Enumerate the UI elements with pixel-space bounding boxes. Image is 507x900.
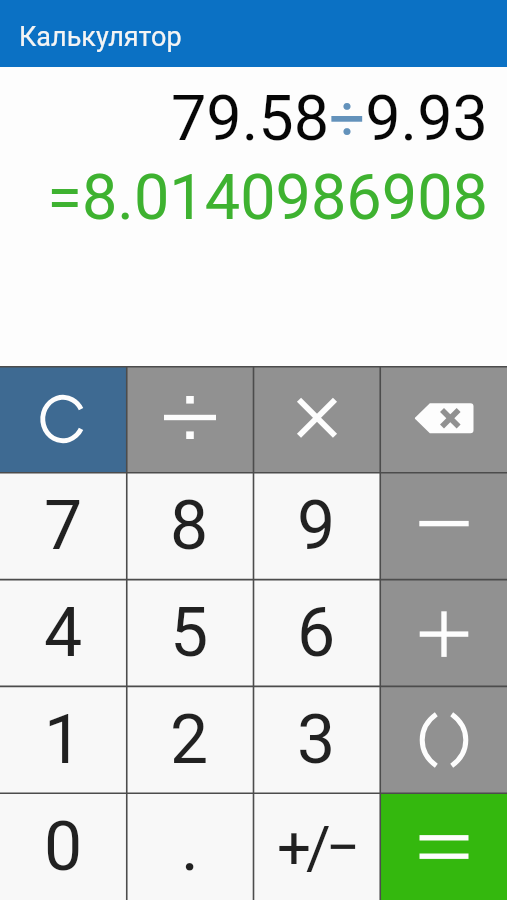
- button[interactable]: 6: [253, 579, 380, 686]
- staticText: +/−: [277, 812, 356, 882]
- button[interactable]: Multiply: [253, 366, 380, 472]
- staticText: 9: [297, 486, 336, 566]
- staticText: 4: [44, 593, 83, 673]
- staticText: 5: [170, 593, 209, 673]
- staticText: 1: [44, 700, 83, 780]
- staticText: 79.58÷9.93: [170, 82, 488, 156]
- button[interactable]: 2: [126, 686, 253, 793]
- button[interactable]: +/−: [253, 793, 380, 900]
- button[interactable]: 7: [0, 472, 126, 579]
- staticText: .: [181, 807, 199, 887]
- button[interactable]: 9: [253, 472, 380, 579]
- button[interactable]: Divide: [126, 366, 253, 472]
- button[interactable]: 5: [126, 579, 253, 686]
- staticText: Калькулятор: [19, 21, 182, 53]
- button[interactable]: 8: [126, 472, 253, 579]
- staticText: 7: [44, 486, 83, 566]
- button[interactable]: Equals: [380, 793, 507, 900]
- button[interactable]: 3: [253, 686, 380, 793]
- button[interactable]: 0: [0, 793, 126, 900]
- button[interactable]: 4: [0, 579, 126, 686]
- button[interactable]: Backspace: [380, 366, 507, 472]
- button[interactable]: Clear: [0, 366, 126, 472]
- button[interactable]: .: [126, 793, 253, 900]
- button[interactable]: Parentheses: [380, 686, 507, 793]
- staticText: 2: [170, 700, 209, 780]
- staticText: 3: [297, 700, 336, 780]
- button[interactable]: Plus: [380, 579, 507, 686]
- button[interactable]: Minus: [380, 472, 507, 579]
- staticText: 8: [170, 486, 209, 566]
- button[interactable]: Калькулятор: [0, 0, 507, 67]
- staticText: 6: [297, 593, 336, 673]
- staticText: =8.0140986908: [47, 161, 488, 235]
- staticText: 0: [44, 807, 83, 887]
- button[interactable]: 1: [0, 686, 126, 793]
